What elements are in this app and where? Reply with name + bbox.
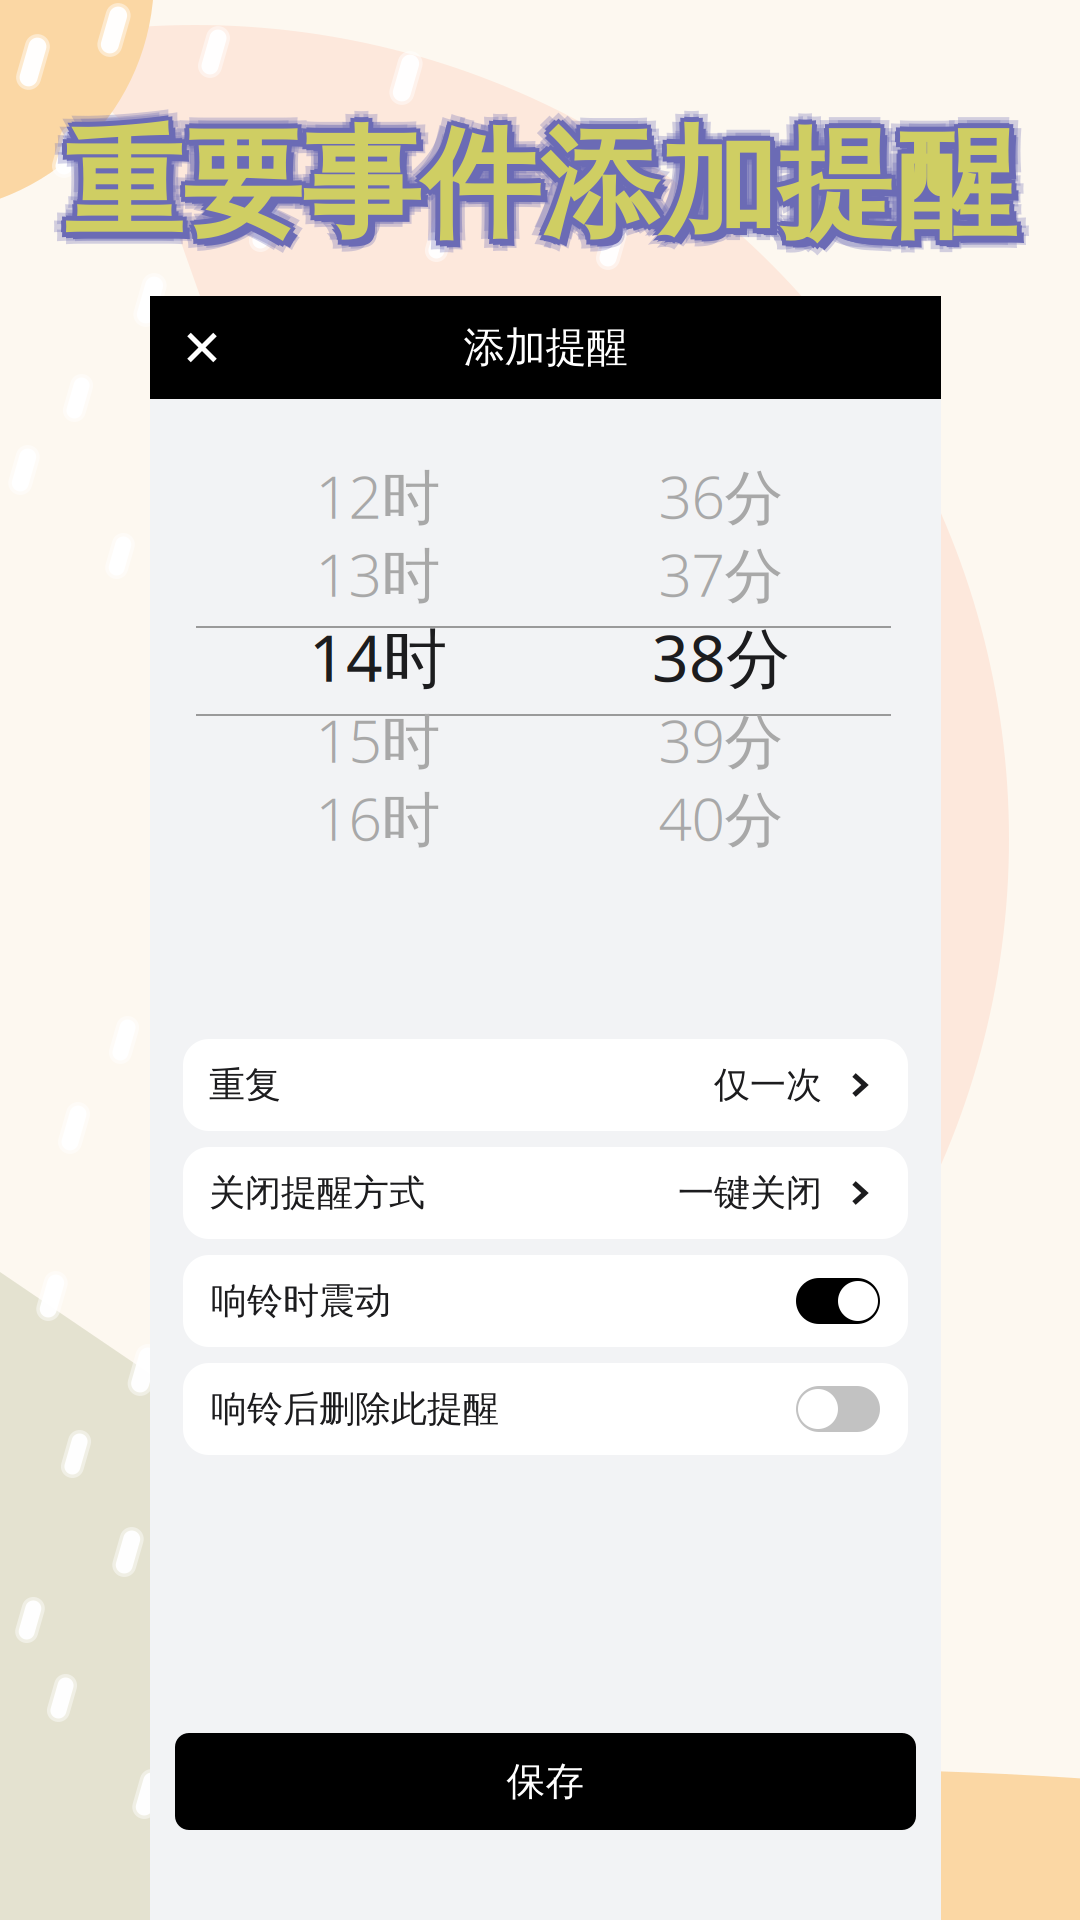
staticText: 响铃后删除此提醒	[211, 1387, 499, 1431]
staticText: 重要事件添加提醒	[64, 101, 1016, 247]
button[interactable]: 响铃后删除此提醒	[183, 1363, 908, 1455]
staticText: 37分	[658, 535, 783, 613]
staticText: 38分	[652, 614, 790, 699]
staticText: 重要事件添加提醒	[60, 108, 1012, 254]
staticText: 重要事件添加提醒	[60, 117, 1012, 263]
staticText: 重要事件添加提醒	[55, 104, 1007, 250]
button[interactable]: 响铃时震动	[183, 1255, 908, 1347]
staticText: 重要事件添加提醒	[59, 112, 1011, 258]
staticText: 响铃时震动	[211, 1279, 391, 1323]
staticText: 重要事件添加提醒	[68, 108, 1020, 254]
staticText: 重要事件添加提醒	[76, 112, 1028, 258]
staticText: 添加提醒	[463, 322, 627, 373]
staticText: 16时	[315, 779, 440, 857]
staticText: 15时	[315, 701, 440, 779]
staticText: 重要事件添加提醒	[64, 124, 1016, 270]
staticText: 重要事件添加提醒	[64, 112, 1016, 258]
staticText: 重要事件添加提醒	[71, 119, 1023, 265]
staticText: 重要事件添加提醒	[64, 118, 1016, 264]
staticText: 12时	[315, 457, 440, 535]
button[interactable]: 关闭提醒方式	[183, 1147, 908, 1239]
staticText: 重要事件添加提醒	[55, 121, 1007, 267]
button[interactable]: 重复	[183, 1039, 908, 1131]
staticText: 仅一次	[714, 1063, 822, 1107]
staticText: 保存	[506, 1758, 584, 1805]
staticText: 重要事件添加提醒	[52, 112, 1004, 258]
staticText: 36分	[658, 457, 783, 535]
staticText: 重要事件添加提醒	[64, 107, 1016, 253]
staticText: 重要事件添加提醒	[73, 104, 1025, 250]
staticText: 39分	[658, 701, 783, 779]
button[interactable]: 保存	[175, 1733, 916, 1830]
staticText: 重要事件添加提醒	[69, 112, 1021, 258]
staticText: 40分	[658, 779, 783, 857]
staticText: 一键关闭	[678, 1171, 822, 1215]
staticText: 重要事件添加提醒	[73, 121, 1025, 267]
staticText: 13时	[315, 535, 440, 613]
button[interactable]: Close	[172, 317, 232, 377]
staticText: 关闭提醒方式	[209, 1171, 425, 1215]
staticText: 重复	[209, 1063, 281, 1107]
staticText: 14时	[309, 614, 447, 699]
staticText: 重要事件添加提醒	[68, 117, 1020, 263]
